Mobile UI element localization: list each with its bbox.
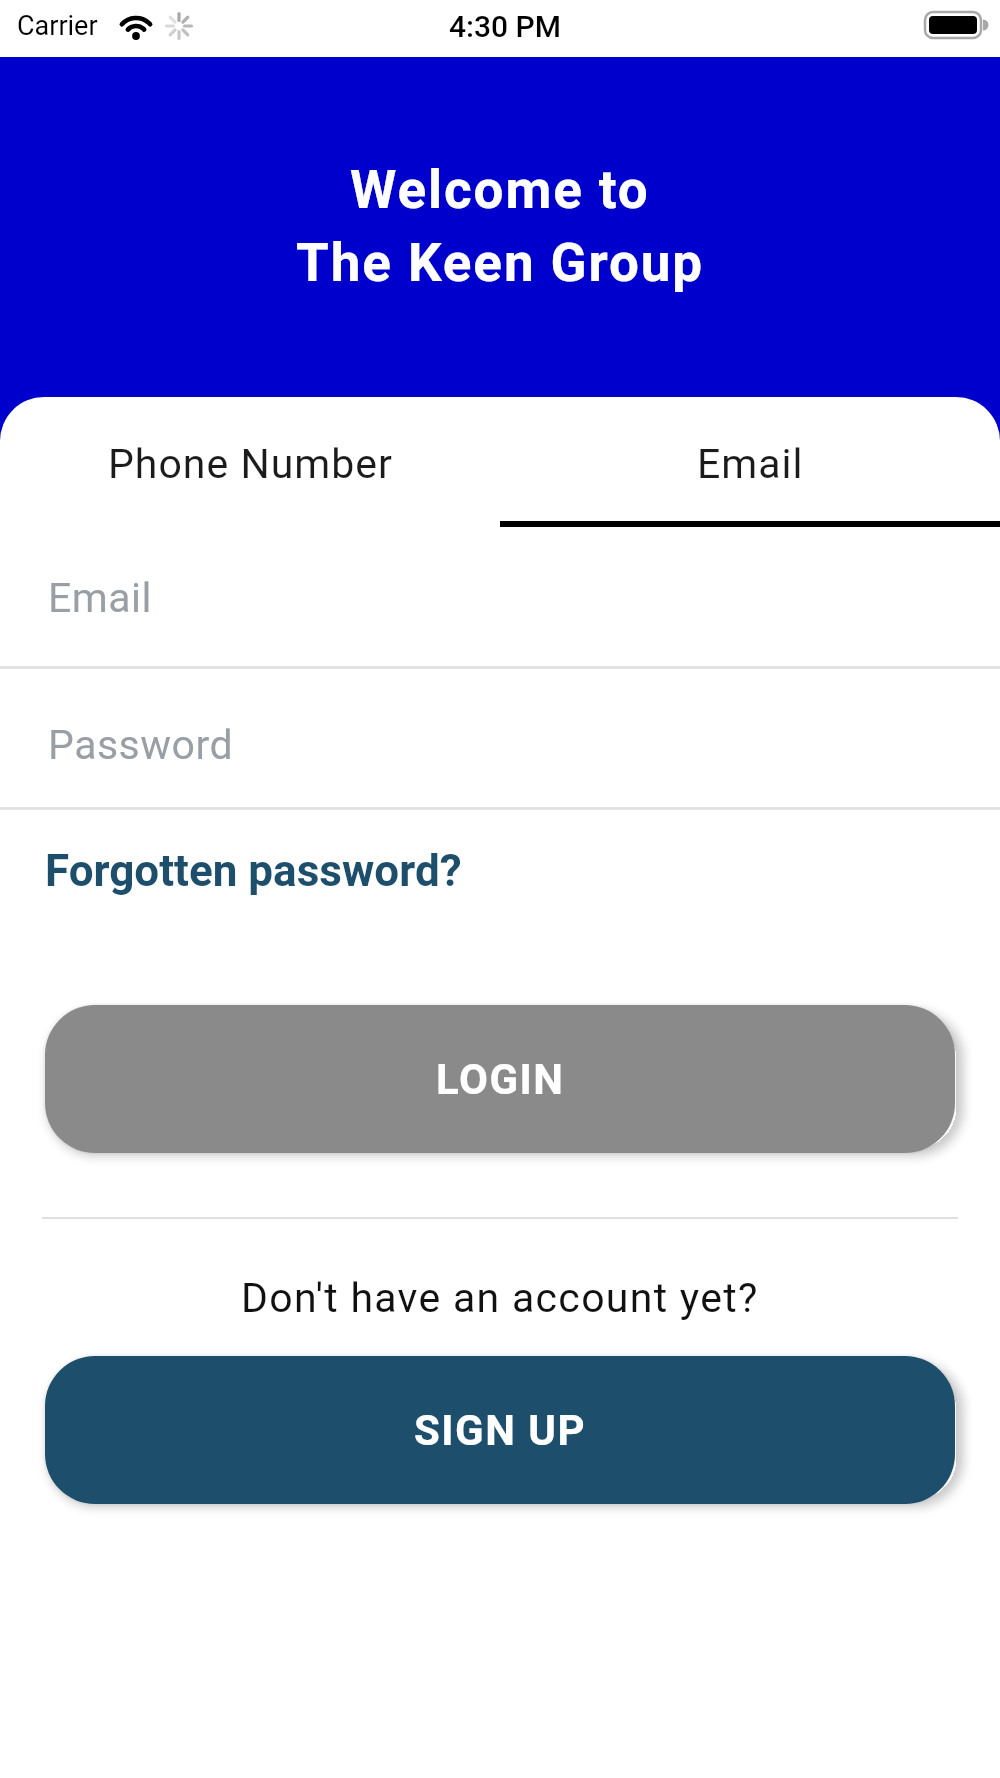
staticText: Carrier xyxy=(17,10,98,42)
staticText: Forgotten password? xyxy=(45,845,462,897)
staticText: Email xyxy=(697,440,804,488)
button[interactable]: LOGIN xyxy=(45,1005,955,1153)
staticText: Welcome to xyxy=(350,159,650,221)
staticText: Password xyxy=(48,721,234,769)
staticText: The Keen Group xyxy=(296,232,705,294)
staticText: Don't have an account yet? xyxy=(241,1274,759,1322)
button[interactable]: Email xyxy=(0,540,1000,667)
staticText: LOGIN xyxy=(436,1055,565,1104)
button[interactable]: Forgotten password? xyxy=(45,840,462,902)
button[interactable]: SIGN UP xyxy=(45,1356,955,1504)
staticText: Phone Number xyxy=(108,440,393,488)
staticText: Email xyxy=(48,574,152,622)
button[interactable]: Email xyxy=(500,400,1000,527)
staticText: 4:30 PM xyxy=(449,9,562,44)
button[interactable]: Password xyxy=(0,669,1000,807)
button[interactable]: Phone Number xyxy=(0,400,500,527)
staticText: SIGN UP xyxy=(414,1406,587,1455)
